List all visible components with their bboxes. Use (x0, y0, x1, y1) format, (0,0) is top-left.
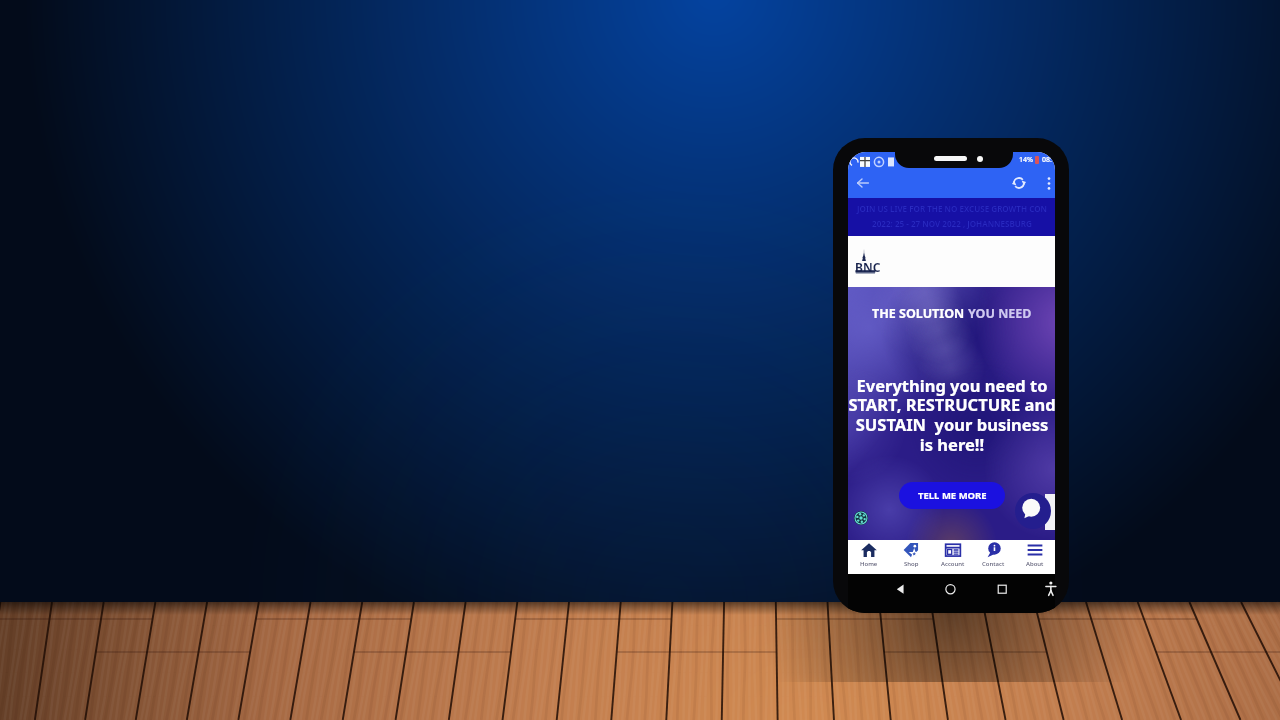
button[interactable]: TELL ME MORE (899, 482, 1005, 509)
button[interactable]: Chat with us (1045, 494, 1055, 530)
staticText: Shop (904, 560, 919, 568)
button[interactable]: Back (848, 168, 878, 198)
button[interactable]: About (1014, 540, 1055, 574)
button[interactable]: More options (1042, 168, 1055, 198)
staticText: 2022: 25 - 27 NOV 2022 , JOHANNESBURG (872, 218, 1032, 229)
button[interactable]: Shop (890, 540, 932, 574)
button[interactable]: Home (848, 540, 890, 574)
staticText: TELL ME MORE (918, 489, 987, 502)
staticText: JOIN US LIVE FOR THE NO EXCUSE GROWTH CO… (857, 203, 1047, 214)
button[interactable]: BNC home (852, 247, 880, 275)
button[interactable]: Open chat (1015, 493, 1051, 529)
staticText: Contact (982, 560, 1005, 568)
button[interactable]: Account (932, 540, 973, 574)
staticText: 14% (1019, 155, 1033, 165)
staticText: YOU NEED (968, 305, 1032, 322)
staticText: Everything you need to START, RESTRUCTUR… (848, 374, 1055, 456)
staticText: THE SOLUTION (872, 305, 968, 322)
staticText: Account (941, 560, 965, 568)
button[interactable]: JOIN US LIVE FOR THE NO EXCUSE GROWTH CO… (848, 198, 1055, 236)
staticText: 08: (1042, 155, 1052, 165)
button[interactable]: Contact (973, 540, 1014, 574)
button[interactable]: Accessibility options (854, 511, 868, 525)
staticText: About (1026, 560, 1044, 568)
button[interactable]: Refresh (1004, 168, 1034, 198)
staticText: BNC (855, 259, 881, 275)
staticText: Home (860, 560, 878, 568)
